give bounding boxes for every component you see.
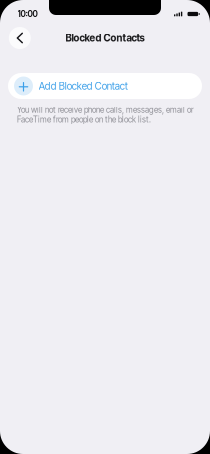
staticText: You will not receive phone calls, messag… <box>17 105 194 124</box>
button[interactable]: Add Blocked Contact <box>8 73 202 99</box>
button[interactable]: Back <box>7 25 33 51</box>
staticText: Add Blocked Contact <box>39 80 128 92</box>
staticText: Blocked Contacts <box>65 32 144 44</box>
staticText: 10:00 <box>17 9 37 19</box>
